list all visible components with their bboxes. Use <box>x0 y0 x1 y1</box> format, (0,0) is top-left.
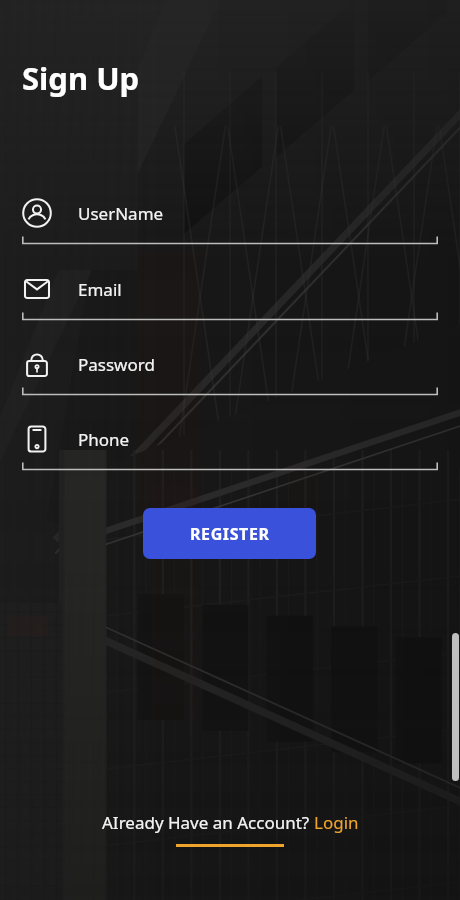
button[interactable]: UserName <box>22 189 438 245</box>
staticText: Email <box>78 278 122 301</box>
button[interactable]: REGISTER <box>143 508 316 559</box>
staticText: Password <box>78 353 155 376</box>
staticText: Login <box>314 811 359 834</box>
button[interactable]: Email <box>22 265 438 321</box>
staticText: AIready Have an Account? <box>102 811 314 834</box>
button[interactable]: Password <box>22 340 438 396</box>
staticText: Sign Up <box>22 57 140 99</box>
button[interactable]: Login <box>314 811 359 834</box>
staticText: Phone <box>78 428 130 451</box>
button[interactable]: Phone <box>22 415 438 471</box>
staticText: UserName <box>78 202 164 225</box>
staticText: REGISTER <box>190 523 270 545</box>
